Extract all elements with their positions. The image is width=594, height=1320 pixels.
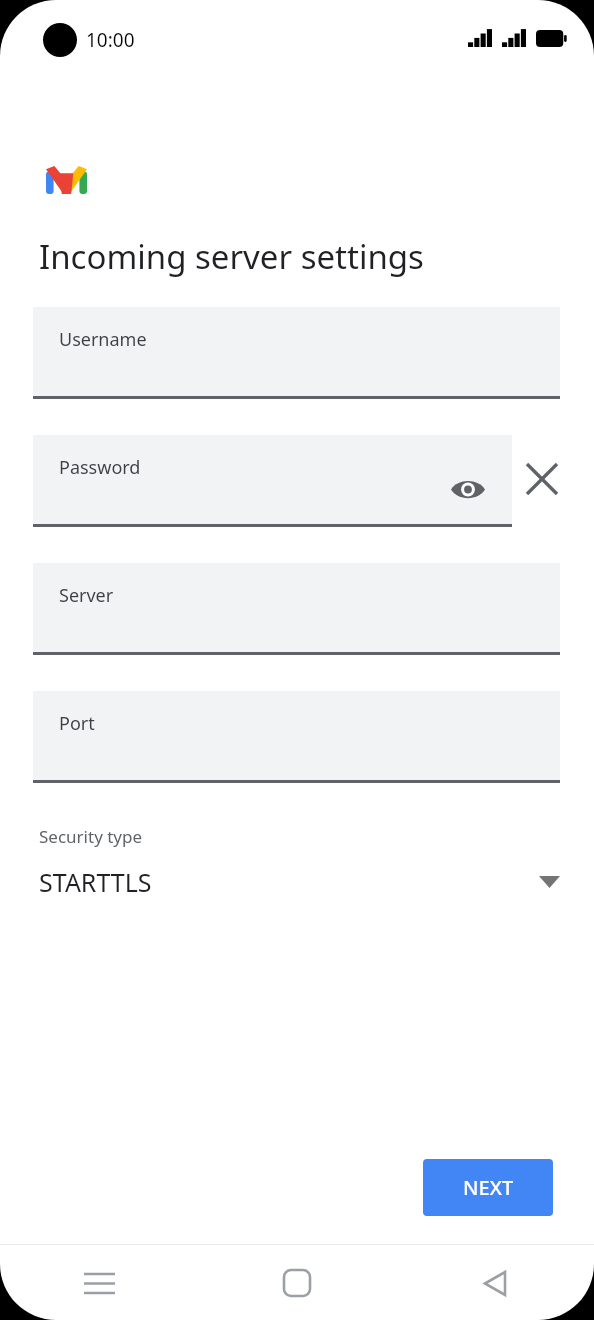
staticText: Server <box>59 583 114 608</box>
button[interactable]: Back <box>464 1252 526 1314</box>
button[interactable]: Port <box>33 691 560 783</box>
staticText: Incoming server settings <box>39 234 424 279</box>
button[interactable]: Recent apps <box>68 1252 130 1314</box>
button[interactable]: Security type <box>0 825 594 899</box>
staticText: Password <box>59 455 141 480</box>
staticText: 10:00 <box>86 27 135 53</box>
button[interactable]: Server <box>33 563 560 655</box>
staticText: STARTTLS <box>39 865 152 899</box>
button[interactable]: NEXT <box>423 1159 553 1216</box>
staticText: Port <box>59 711 95 736</box>
button[interactable]: Password <box>33 435 512 527</box>
button[interactable]: Username <box>33 307 560 399</box>
staticText: Security type <box>39 825 143 848</box>
staticText: Username <box>59 327 147 352</box>
staticText: NEXT <box>463 1174 514 1201</box>
button[interactable]: Home <box>266 1252 328 1314</box>
button[interactable]: Clear password <box>516 453 568 505</box>
button[interactable]: Show password <box>446 467 490 511</box>
